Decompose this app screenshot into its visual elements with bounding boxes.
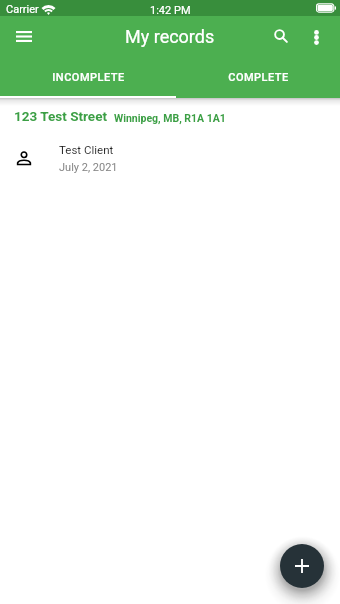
staticText: July 2, 2021 bbox=[59, 161, 118, 174]
staticText: INCOMPLETE bbox=[52, 71, 125, 84]
button[interactable]: Search bbox=[268, 23, 293, 48]
staticText: 123 Test Street bbox=[14, 108, 107, 124]
button[interactable]: Add record bbox=[280, 544, 324, 588]
staticText: Carrier bbox=[6, 3, 39, 16]
button[interactable]: Test Client bbox=[0, 134, 340, 182]
staticText: Winnipeg, MB, R1A 1A1 bbox=[114, 112, 226, 124]
button[interactable]: INCOMPLETE bbox=[0, 56, 176, 98]
button[interactable]: COMPLETE bbox=[176, 56, 340, 98]
staticText: My records bbox=[125, 26, 215, 47]
staticText: COMPLETE bbox=[228, 71, 289, 84]
staticText: Test Client bbox=[59, 143, 114, 156]
button[interactable]: More options bbox=[304, 25, 328, 49]
staticText: 1:42 PM bbox=[150, 4, 191, 17]
button[interactable]: Open navigation menu bbox=[12, 24, 36, 48]
